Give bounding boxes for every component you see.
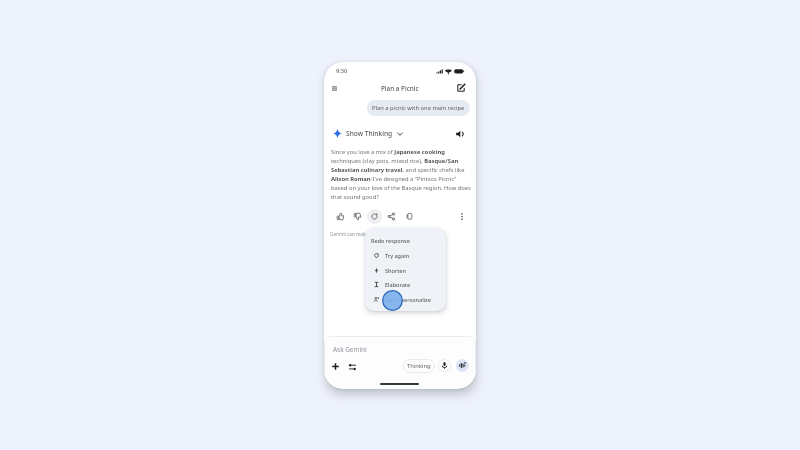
staticText: Redo response: [371, 237, 410, 244]
button[interactable]: Dislike: [350, 209, 365, 224]
staticText: 9:30: [336, 67, 348, 75]
button[interactable]: Elaborate: [365, 277, 446, 292]
button[interactable]: Regenerate: [367, 209, 382, 224]
staticText: Ask Gemini: [333, 345, 367, 354]
button[interactable]: New chat: [455, 82, 467, 94]
button[interactable]: Plan a picnic with one main recipe: [367, 100, 470, 116]
staticText: Elaborate: [385, 281, 411, 288]
button[interactable]: Show Thinking: [346, 129, 403, 138]
button[interactable]: Shorten: [365, 263, 446, 278]
staticText: Don't personalize: [385, 296, 431, 303]
button[interactable]: Share: [384, 209, 399, 224]
button[interactable]: Don't personalize: [365, 292, 446, 307]
button[interactable]: Menu: [328, 82, 340, 94]
staticText: Thinking: [407, 362, 431, 370]
button[interactable]: Add: [329, 360, 342, 373]
button[interactable]: Voice input: [438, 359, 451, 372]
button[interactable]: Tools: [346, 360, 359, 373]
staticText: Since you love a mix of Japanese cooking…: [331, 148, 476, 201]
button[interactable]: Listen: [454, 128, 465, 139]
button[interactable]: More options: [454, 209, 469, 224]
staticText: Shorten: [385, 267, 406, 274]
staticText: Show Thinking: [346, 129, 393, 138]
button[interactable]: Thinking: [403, 359, 435, 373]
staticText: Plan a picnic with one main recipe: [372, 104, 465, 112]
button[interactable]: Try again: [365, 248, 446, 263]
button[interactable]: Like: [333, 209, 348, 224]
button[interactable]: Copy: [402, 209, 417, 224]
staticText: Try again: [385, 252, 410, 259]
staticText: Plan a Picnic: [381, 84, 419, 93]
button[interactable]: Gemini Live: [456, 359, 469, 372]
staticText: Gemini can make: [330, 231, 369, 237]
